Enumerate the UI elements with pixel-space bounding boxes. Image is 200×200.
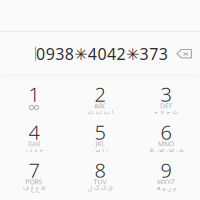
- staticText: م ن و ه: [156, 182, 176, 194]
- staticText: 5: [94, 119, 105, 145]
- staticText: 6: [160, 119, 171, 145]
- staticText: PQRS: [25, 177, 42, 186]
- button[interactable]: 3: [133, 76, 199, 114]
- staticText: 1: [28, 81, 39, 107]
- staticText: 4: [28, 119, 39, 145]
- staticText: TUV: [93, 177, 106, 186]
- button[interactable]: 2: [67, 76, 133, 114]
- staticText: 7: [28, 157, 39, 183]
- button[interactable]: 1: [1, 76, 67, 114]
- button[interactable]: 7: [1, 152, 67, 190]
- button[interactable]: 6: [133, 114, 199, 152]
- staticText: ظ ع غ ف: [22, 182, 45, 194]
- staticText: 9: [160, 157, 171, 183]
- staticText: DEF: [160, 101, 172, 110]
- staticText: 0938✳4042✳373: [36, 43, 168, 64]
- button[interactable]: 5: [67, 114, 133, 152]
- button[interactable]: 8: [67, 152, 133, 190]
- staticText: ز ژ س: [92, 144, 107, 156]
- button[interactable]: 4: [1, 114, 67, 152]
- staticText: ق ک گ ل: [87, 182, 112, 194]
- staticText: JKL: [95, 139, 104, 148]
- staticText: GHI: [28, 139, 40, 148]
- staticText: ث ج چ ح: [154, 106, 178, 118]
- staticText: خ د ذ ر: [25, 144, 43, 156]
- staticText: ABC: [94, 101, 106, 110]
- staticText: 2: [94, 81, 105, 107]
- staticText: 3: [160, 81, 171, 107]
- staticText: 8: [94, 157, 105, 183]
- staticText: WXYZ: [157, 177, 175, 186]
- staticText: ا ب پ ت: [87, 106, 112, 118]
- staticText: ش ص ض ط: [149, 144, 183, 156]
- button[interactable]: Delete: [173, 44, 195, 64]
- button[interactable]: 9: [133, 152, 199, 190]
- staticText: MNO: [158, 139, 174, 148]
